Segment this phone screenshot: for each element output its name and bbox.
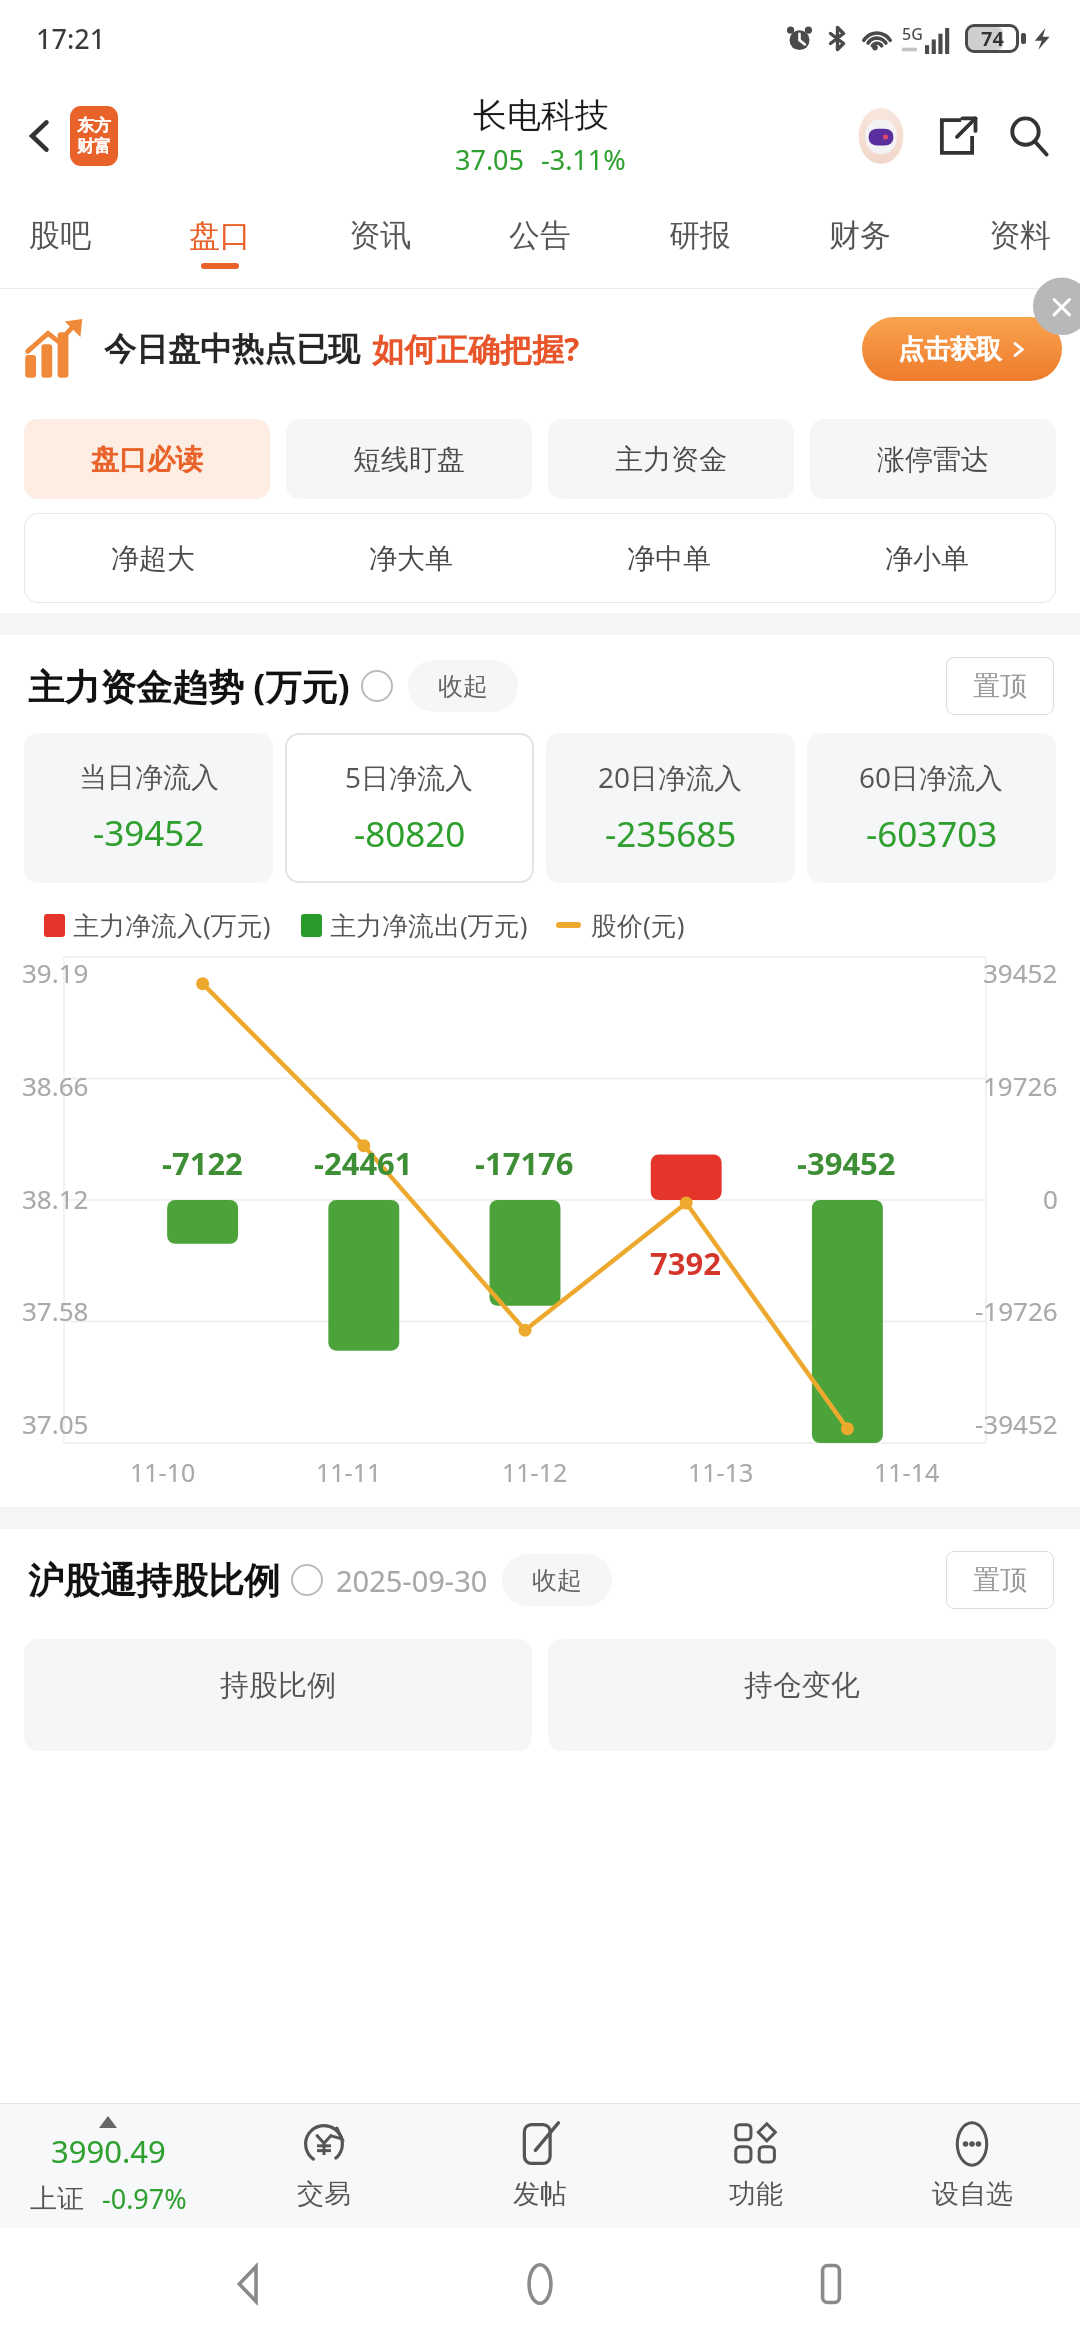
staticText: 11-13 [688, 1455, 754, 1489]
button[interactable]: 研报 [656, 210, 744, 275]
staticText: 39452 [983, 955, 1058, 990]
staticText: 发帖 [513, 2177, 567, 2211]
staticText: 资讯 [349, 216, 411, 255]
staticText: 主力净流入(万元) [73, 907, 271, 943]
staticText: -603703 [866, 810, 998, 858]
button[interactable]: 净小单 [798, 513, 1056, 603]
staticText: 公告 [509, 216, 571, 255]
staticText: 0 [1043, 1181, 1058, 1216]
button[interactable]: 发帖 [432, 2104, 648, 2228]
staticText: 60日净流入 [859, 758, 1004, 796]
button[interactable]: 财务 [816, 210, 904, 275]
button[interactable]: 净中单 [540, 513, 798, 603]
staticText: 收起 [438, 671, 488, 702]
staticText: 净中单 [627, 541, 711, 576]
button[interactable]: 5日净流入 [285, 733, 534, 883]
staticText: -80820 [354, 810, 466, 858]
staticText: 置顶 [973, 1563, 1027, 1597]
button[interactable]: 功能 [648, 2104, 864, 2228]
staticText: -235685 [605, 810, 737, 858]
staticText: 持仓变化 [744, 1667, 860, 1704]
button[interactable]: 资讯 [336, 210, 424, 275]
staticText: 如何正确把握? [372, 327, 580, 371]
staticText: -0.97% [102, 2180, 187, 2217]
staticText: -39452 [797, 1142, 896, 1184]
button[interactable]: AI assistant [850, 105, 912, 167]
button[interactable]: 60日净流入 [807, 733, 1056, 883]
button[interactable]: 持仓变化 [548, 1639, 1056, 1751]
staticText: 今日盘中热点已现 [104, 329, 360, 369]
staticText: 盘口 [189, 216, 251, 255]
staticText: 2025-09-30 [336, 1561, 488, 1600]
staticText: -39452 [93, 809, 205, 857]
staticText: 净大单 [369, 541, 453, 576]
staticText: 11-11 [316, 1455, 382, 1489]
button[interactable]: Back [14, 98, 126, 174]
staticText: 股价(元) [591, 907, 685, 943]
staticText: 37.05 [455, 141, 525, 178]
button[interactable]: Recents [789, 2242, 873, 2326]
staticText: 11-12 [502, 1455, 568, 1489]
button[interactable]: 交易 [216, 2104, 432, 2228]
button[interactable]: 置顶 [946, 657, 1054, 715]
button[interactable]: 20日净流入 [546, 733, 795, 883]
staticText: 20日净流入 [598, 758, 743, 796]
button[interactable]: 净超大 [24, 513, 282, 603]
button[interactable]: 持股比例 [24, 1639, 532, 1751]
staticText: 11-14 [874, 1455, 940, 1489]
staticText: 短线盯盘 [353, 442, 465, 477]
staticText: 7392 [650, 1242, 721, 1284]
staticText: -17176 [475, 1142, 574, 1184]
button[interactable]: 公告 [496, 210, 584, 275]
button[interactable]: 当日净流入 [24, 733, 273, 883]
button[interactable]: 3990.49 [0, 2104, 216, 2228]
staticText: 净小单 [885, 541, 969, 576]
staticText: 当日净流入 [79, 760, 219, 795]
staticText: 37.58 [22, 1293, 89, 1328]
staticText: 37.05 [22, 1406, 89, 1441]
staticText: 5日净流入 [345, 758, 474, 796]
staticText: 5G [902, 23, 923, 45]
button[interactable]: 点击获取 [862, 317, 1062, 381]
staticText: 主力资金 [615, 442, 727, 477]
button[interactable]: Home [498, 2242, 582, 2326]
staticText: 点击获取 [898, 333, 1002, 366]
staticText: 38.66 [22, 1068, 89, 1103]
button[interactable]: 收起 [502, 1554, 612, 1606]
staticText: 74 [981, 25, 1004, 52]
button[interactable]: 置顶 [946, 1551, 1054, 1609]
button[interactable]: Share [926, 105, 988, 167]
staticText: 股吧 [29, 216, 91, 255]
staticText: 持股比例 [220, 1667, 336, 1704]
staticText: 资料 [989, 216, 1051, 255]
staticText: 3990.49 [51, 2130, 166, 2172]
button[interactable]: Search [998, 105, 1060, 167]
button[interactable]: 涨停雷达 [810, 419, 1056, 499]
staticText: 11-10 [130, 1455, 196, 1489]
staticText: 财富 [77, 136, 111, 157]
staticText: -3.11% [541, 141, 626, 178]
staticText: 置顶 [973, 669, 1027, 703]
button[interactable]: Back [207, 2242, 291, 2326]
staticText: 设自选 [932, 2177, 1013, 2211]
button[interactable]: 盘口必读 [24, 419, 270, 499]
staticText: 主力资金趋势 (万元) [28, 662, 350, 711]
staticText: -39452 [975, 1406, 1058, 1441]
staticText: 收起 [532, 1565, 582, 1596]
button[interactable]: Close ad [1032, 289, 1080, 337]
button[interactable]: 短线盯盘 [286, 419, 532, 499]
staticText: 17:21 [36, 20, 106, 57]
button[interactable]: 设自选 [864, 2104, 1080, 2228]
staticText: 净超大 [111, 541, 195, 576]
button[interactable]: 股吧 [16, 210, 104, 275]
button[interactable]: 收起 [408, 660, 518, 712]
button[interactable]: 净大单 [282, 513, 540, 603]
button[interactable]: 今日盘中热点已现 [0, 289, 1080, 409]
staticText: 19726 [983, 1068, 1058, 1103]
staticText: 长电科技 [473, 94, 609, 137]
button[interactable]: 资料 [976, 210, 1064, 275]
button[interactable]: 盘口 [176, 210, 264, 275]
staticText: 研报 [669, 216, 731, 255]
staticText: 交易 [297, 2177, 351, 2211]
button[interactable]: 主力资金 [548, 419, 794, 499]
